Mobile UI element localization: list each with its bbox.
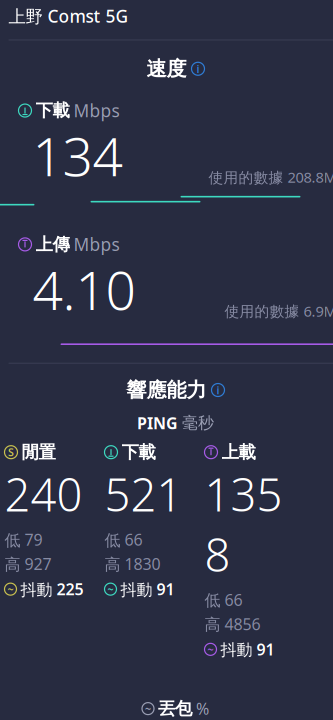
staticText: ~ xyxy=(145,701,151,716)
staticText: 4.10 xyxy=(32,254,135,325)
staticText: 閒置 xyxy=(21,441,55,463)
staticText: 低 66 xyxy=(204,589,242,610)
staticText: PING xyxy=(137,412,178,433)
staticText: 抖動 91 xyxy=(220,639,274,660)
staticText: 上傳 xyxy=(35,234,69,255)
staticText: 240 xyxy=(4,464,82,524)
staticText: 使用的數據 6.9MB xyxy=(224,301,333,321)
staticText: i xyxy=(196,62,199,76)
staticText: 速度 xyxy=(146,56,186,81)
staticText: 上野 Comst 5G xyxy=(8,4,128,27)
staticText: ~ xyxy=(107,582,113,596)
staticText: i xyxy=(216,383,219,397)
staticText: 高 4856 xyxy=(204,613,260,635)
staticText: 134 xyxy=(32,120,122,191)
staticText: 低 79 xyxy=(4,529,42,550)
staticText: 高 927 xyxy=(4,553,51,574)
staticText: 抖動 91 xyxy=(120,578,174,600)
staticText: 使用的數據 208.8MB xyxy=(208,167,333,187)
staticText: Mbps xyxy=(73,99,119,122)
staticText: 下載 xyxy=(121,441,155,463)
staticText: 毫秒 xyxy=(182,413,214,433)
staticText: S xyxy=(8,445,14,459)
staticText: ~ xyxy=(7,582,13,596)
button[interactable]: About speed xyxy=(191,62,204,75)
staticText: 521 xyxy=(104,464,182,524)
staticText: 1358 xyxy=(204,464,282,584)
staticText: 響應能力 xyxy=(126,378,206,402)
staticText: 下載 xyxy=(35,100,69,121)
staticText: ~ xyxy=(207,642,213,656)
staticText: 丟包 xyxy=(158,698,192,719)
staticText: 高 1830 xyxy=(104,553,160,574)
staticText: % xyxy=(196,698,209,719)
staticText: 上載 xyxy=(221,441,255,463)
button[interactable]: About responsiveness xyxy=(211,383,224,396)
staticText: 抖動 225 xyxy=(20,578,83,600)
staticText: Mbps xyxy=(73,233,119,256)
staticText: 低 66 xyxy=(104,529,142,550)
